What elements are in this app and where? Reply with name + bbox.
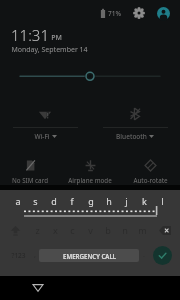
staticText: j [125, 195, 128, 207]
button[interactable]: h [102, 193, 115, 208]
staticText: 71% [108, 9, 121, 18]
staticText: 11:31 [11, 25, 49, 45]
staticText: Wi-Fi [34, 132, 50, 141]
button[interactable]: Settings [131, 5, 147, 21]
staticText: d [51, 195, 57, 207]
staticText: k [142, 195, 147, 207]
button[interactable]: a [11, 193, 24, 208]
button[interactable]: d [47, 193, 60, 208]
button[interactable]: No SIM card [0, 150, 60, 190]
staticText: f [70, 195, 74, 207]
button[interactable]: j [120, 193, 133, 208]
staticText: g [88, 195, 94, 207]
button[interactable]: Backspace [154, 219, 176, 241]
staticText: m [138, 224, 147, 236]
staticText: z [35, 224, 40, 236]
button[interactable]: User [155, 5, 171, 21]
staticText: s [33, 195, 38, 207]
button[interactable]: Wi-Fi [0, 100, 90, 144]
button[interactable]: EMERGENCY CALL [39, 249, 139, 262]
staticText: EMERGENCY CALL [63, 252, 116, 260]
button[interactable]: Auto-rotate [120, 150, 180, 190]
staticText: ?123 [11, 251, 26, 260]
button[interactable]: s [29, 193, 42, 208]
button[interactable]: l [156, 193, 169, 208]
button[interactable]: Bluetooth [90, 100, 180, 144]
staticText: n [122, 224, 128, 236]
button[interactable]: k [138, 193, 151, 208]
staticText: x [53, 224, 58, 236]
button[interactable]: Back [29, 279, 47, 297]
staticText: Monday, September 14 [11, 45, 88, 55]
staticText: l [161, 195, 164, 207]
button[interactable]: f [65, 193, 78, 208]
button[interactable]: Brightness [0, 68, 180, 86]
button[interactable]: Enter [153, 246, 172, 265]
staticText: Airplane mode [68, 176, 112, 184]
staticText: Bluetooth [116, 132, 147, 141]
staticText: b [105, 224, 111, 236]
staticText: No SIM card [12, 176, 48, 184]
staticText: PM [51, 33, 62, 43]
button[interactable]: g [84, 193, 97, 208]
staticText: Auto-rotate [133, 176, 168, 184]
staticText: a [15, 195, 21, 207]
button[interactable]: Airplane mode [60, 150, 120, 190]
staticText: h [106, 195, 112, 207]
